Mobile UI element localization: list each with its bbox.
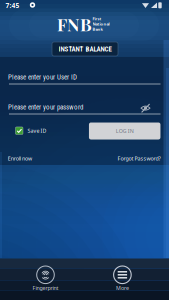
staticText: 7:45	[5, 1, 19, 10]
button[interactable]: More	[105, 264, 139, 294]
button[interactable]: Fingerprint	[28, 264, 62, 294]
button[interactable]: Enroll	[8, 155, 32, 162]
button[interactable]: Forgot Password?	[117, 155, 160, 162]
staticText: More	[116, 284, 129, 292]
button[interactable]: INSTANT BALANCE	[52, 42, 118, 56]
button[interactable]: Save ID	[15, 127, 46, 134]
button[interactable]: LOG IN	[89, 122, 160, 139]
staticText: Please enter your User ID	[8, 73, 77, 81]
staticText: Forgot Password?	[117, 155, 160, 162]
button[interactable]: User ID	[0, 66, 169, 88]
staticText: INSTANT BALANCE	[58, 45, 111, 53]
button[interactable]: Show password	[140, 102, 151, 113]
staticText: Save ID	[27, 127, 46, 134]
staticText: FNB	[57, 12, 92, 35]
staticText: National	[92, 21, 109, 27]
staticText: LOG IN	[116, 127, 134, 135]
staticText: Fingerprint	[32, 284, 58, 292]
button[interactable]: Password	[0, 96, 169, 118]
staticText: Enroll	[8, 155, 21, 162]
staticText: First	[92, 16, 101, 21]
staticText: Bank	[92, 27, 102, 32]
staticText: now	[22, 155, 32, 162]
staticText: Please enter your password	[8, 103, 83, 111]
